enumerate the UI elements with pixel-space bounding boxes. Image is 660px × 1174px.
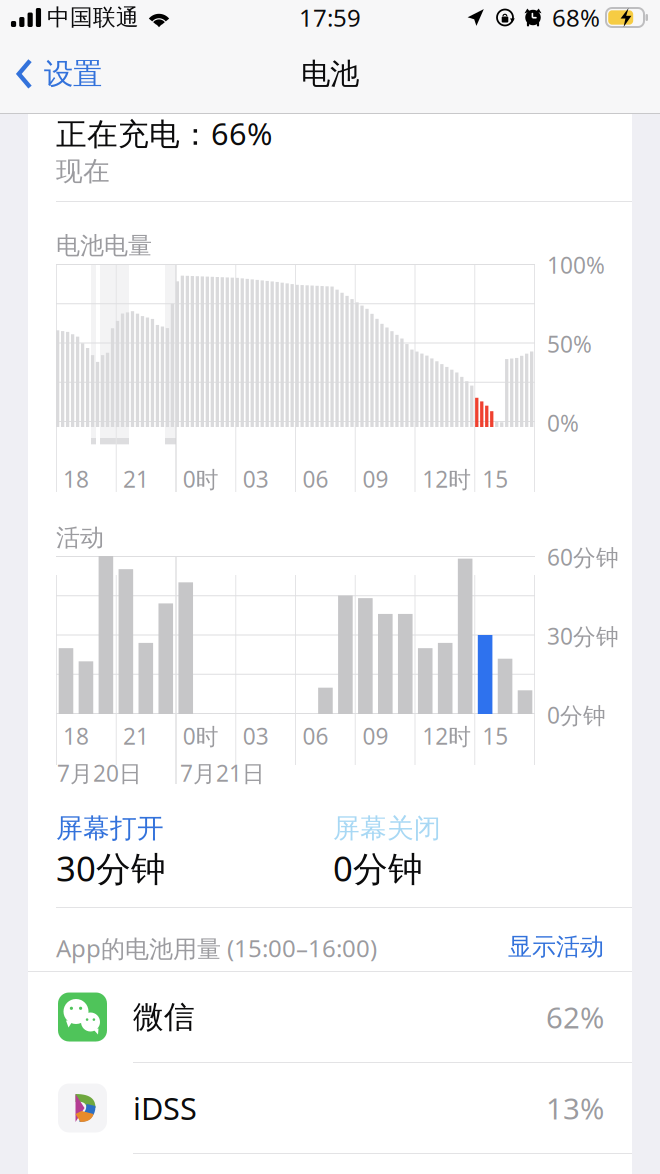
button[interactable]: 设置 bbox=[0, 46, 116, 102]
staticText: iDSS bbox=[133, 1088, 197, 1128]
button[interactable]: 微信 bbox=[28, 972, 632, 1062]
staticText: 正在充电：66% bbox=[56, 113, 272, 154]
staticText: 17:59 bbox=[299, 2, 361, 33]
staticText: 0时 bbox=[183, 721, 219, 751]
staticText: 0分钟 bbox=[333, 845, 423, 891]
staticText: 06 bbox=[302, 464, 328, 494]
staticText: App的电池用量 (15:00–16:00) bbox=[56, 932, 377, 964]
staticText: 7月20日 bbox=[57, 758, 142, 788]
staticText: 屏幕关闭 bbox=[333, 812, 441, 845]
staticText: 18 bbox=[63, 464, 89, 494]
staticText: 06 bbox=[302, 721, 328, 751]
staticText: 09 bbox=[362, 721, 388, 751]
staticText: 30分钟 bbox=[56, 845, 166, 891]
staticText: 12时 bbox=[422, 464, 471, 494]
staticText: 100% bbox=[547, 250, 605, 280]
staticText: 50% bbox=[547, 329, 592, 359]
staticText: 13% bbox=[546, 1088, 604, 1127]
staticText: 电池电量 bbox=[56, 231, 152, 260]
staticText: 电池 bbox=[301, 56, 359, 92]
staticText: 68% bbox=[552, 2, 600, 33]
staticText: 03 bbox=[243, 721, 269, 751]
staticText: 60分钟 bbox=[547, 542, 619, 572]
staticText: 62% bbox=[546, 997, 604, 1036]
staticText: 0% bbox=[547, 408, 579, 438]
staticText: 0时 bbox=[183, 464, 219, 494]
staticText: 21 bbox=[123, 464, 149, 494]
staticText: 15 bbox=[482, 464, 508, 494]
staticText: 0分钟 bbox=[547, 700, 606, 730]
staticText: 活动 bbox=[56, 523, 104, 552]
staticText: 15 bbox=[482, 721, 508, 751]
staticText: 现在 bbox=[56, 155, 110, 188]
staticText: 微信 bbox=[133, 998, 195, 1036]
staticText: 中国联通 bbox=[47, 4, 139, 31]
staticText: 屏幕打开 bbox=[56, 812, 164, 845]
staticText: 显示活动 bbox=[508, 932, 604, 961]
staticText: 12时 bbox=[422, 721, 471, 751]
staticText: 设置 bbox=[44, 56, 102, 92]
button[interactable]: iDSS bbox=[28, 1063, 632, 1153]
staticText: 30分钟 bbox=[547, 621, 619, 651]
staticText: 7月21日 bbox=[180, 758, 265, 788]
staticText: 21 bbox=[123, 721, 149, 751]
button[interactable]: 显示活动 bbox=[504, 932, 604, 961]
staticText: 03 bbox=[243, 464, 269, 494]
staticText: 18 bbox=[63, 721, 89, 751]
staticText: 09 bbox=[362, 464, 388, 494]
